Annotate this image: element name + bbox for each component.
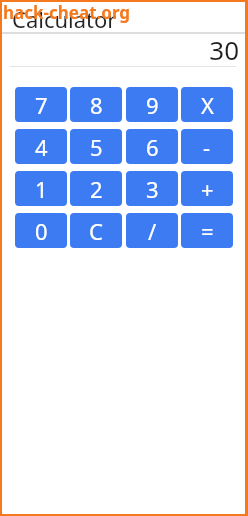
button[interactable]: / — [126, 213, 178, 248]
staticText: 8 — [90, 90, 103, 120]
button[interactable]: 0 — [15, 213, 67, 248]
button[interactable]: 5 — [70, 129, 122, 164]
staticText: 1 — [35, 174, 48, 204]
staticText: 9 — [146, 90, 159, 120]
button[interactable]: 4 — [15, 129, 67, 164]
staticText: 30 — [209, 32, 239, 67]
staticText: = — [201, 216, 214, 246]
staticText: / — [148, 216, 157, 246]
staticText: 2 — [90, 174, 103, 204]
button[interactable]: C — [70, 213, 122, 248]
staticText: 0 — [35, 216, 48, 246]
staticText: C — [89, 216, 103, 246]
button[interactable]: 2 — [70, 171, 122, 206]
staticText: hack-cheat.org — [3, 1, 131, 24]
button[interactable]: 7 — [15, 87, 67, 122]
button[interactable]: 1 — [15, 171, 67, 206]
button[interactable]: + — [181, 171, 233, 206]
button[interactable]: 9 — [126, 87, 178, 122]
staticText: + — [201, 174, 214, 204]
staticText: 3 — [146, 174, 159, 204]
staticText: 5 — [90, 132, 103, 162]
button[interactable]: 8 — [70, 87, 122, 122]
staticText: 7 — [35, 90, 48, 120]
button[interactable]: - — [181, 129, 233, 164]
staticText: Calculator — [12, 4, 117, 34]
staticText: 6 — [146, 132, 159, 162]
staticText: X — [201, 90, 214, 120]
button[interactable]: X — [181, 87, 233, 122]
button[interactable]: 3 — [126, 171, 178, 206]
button[interactable]: = — [181, 213, 233, 248]
staticText: 4 — [35, 132, 48, 162]
button[interactable]: 6 — [126, 129, 178, 164]
staticText: - — [203, 132, 211, 162]
